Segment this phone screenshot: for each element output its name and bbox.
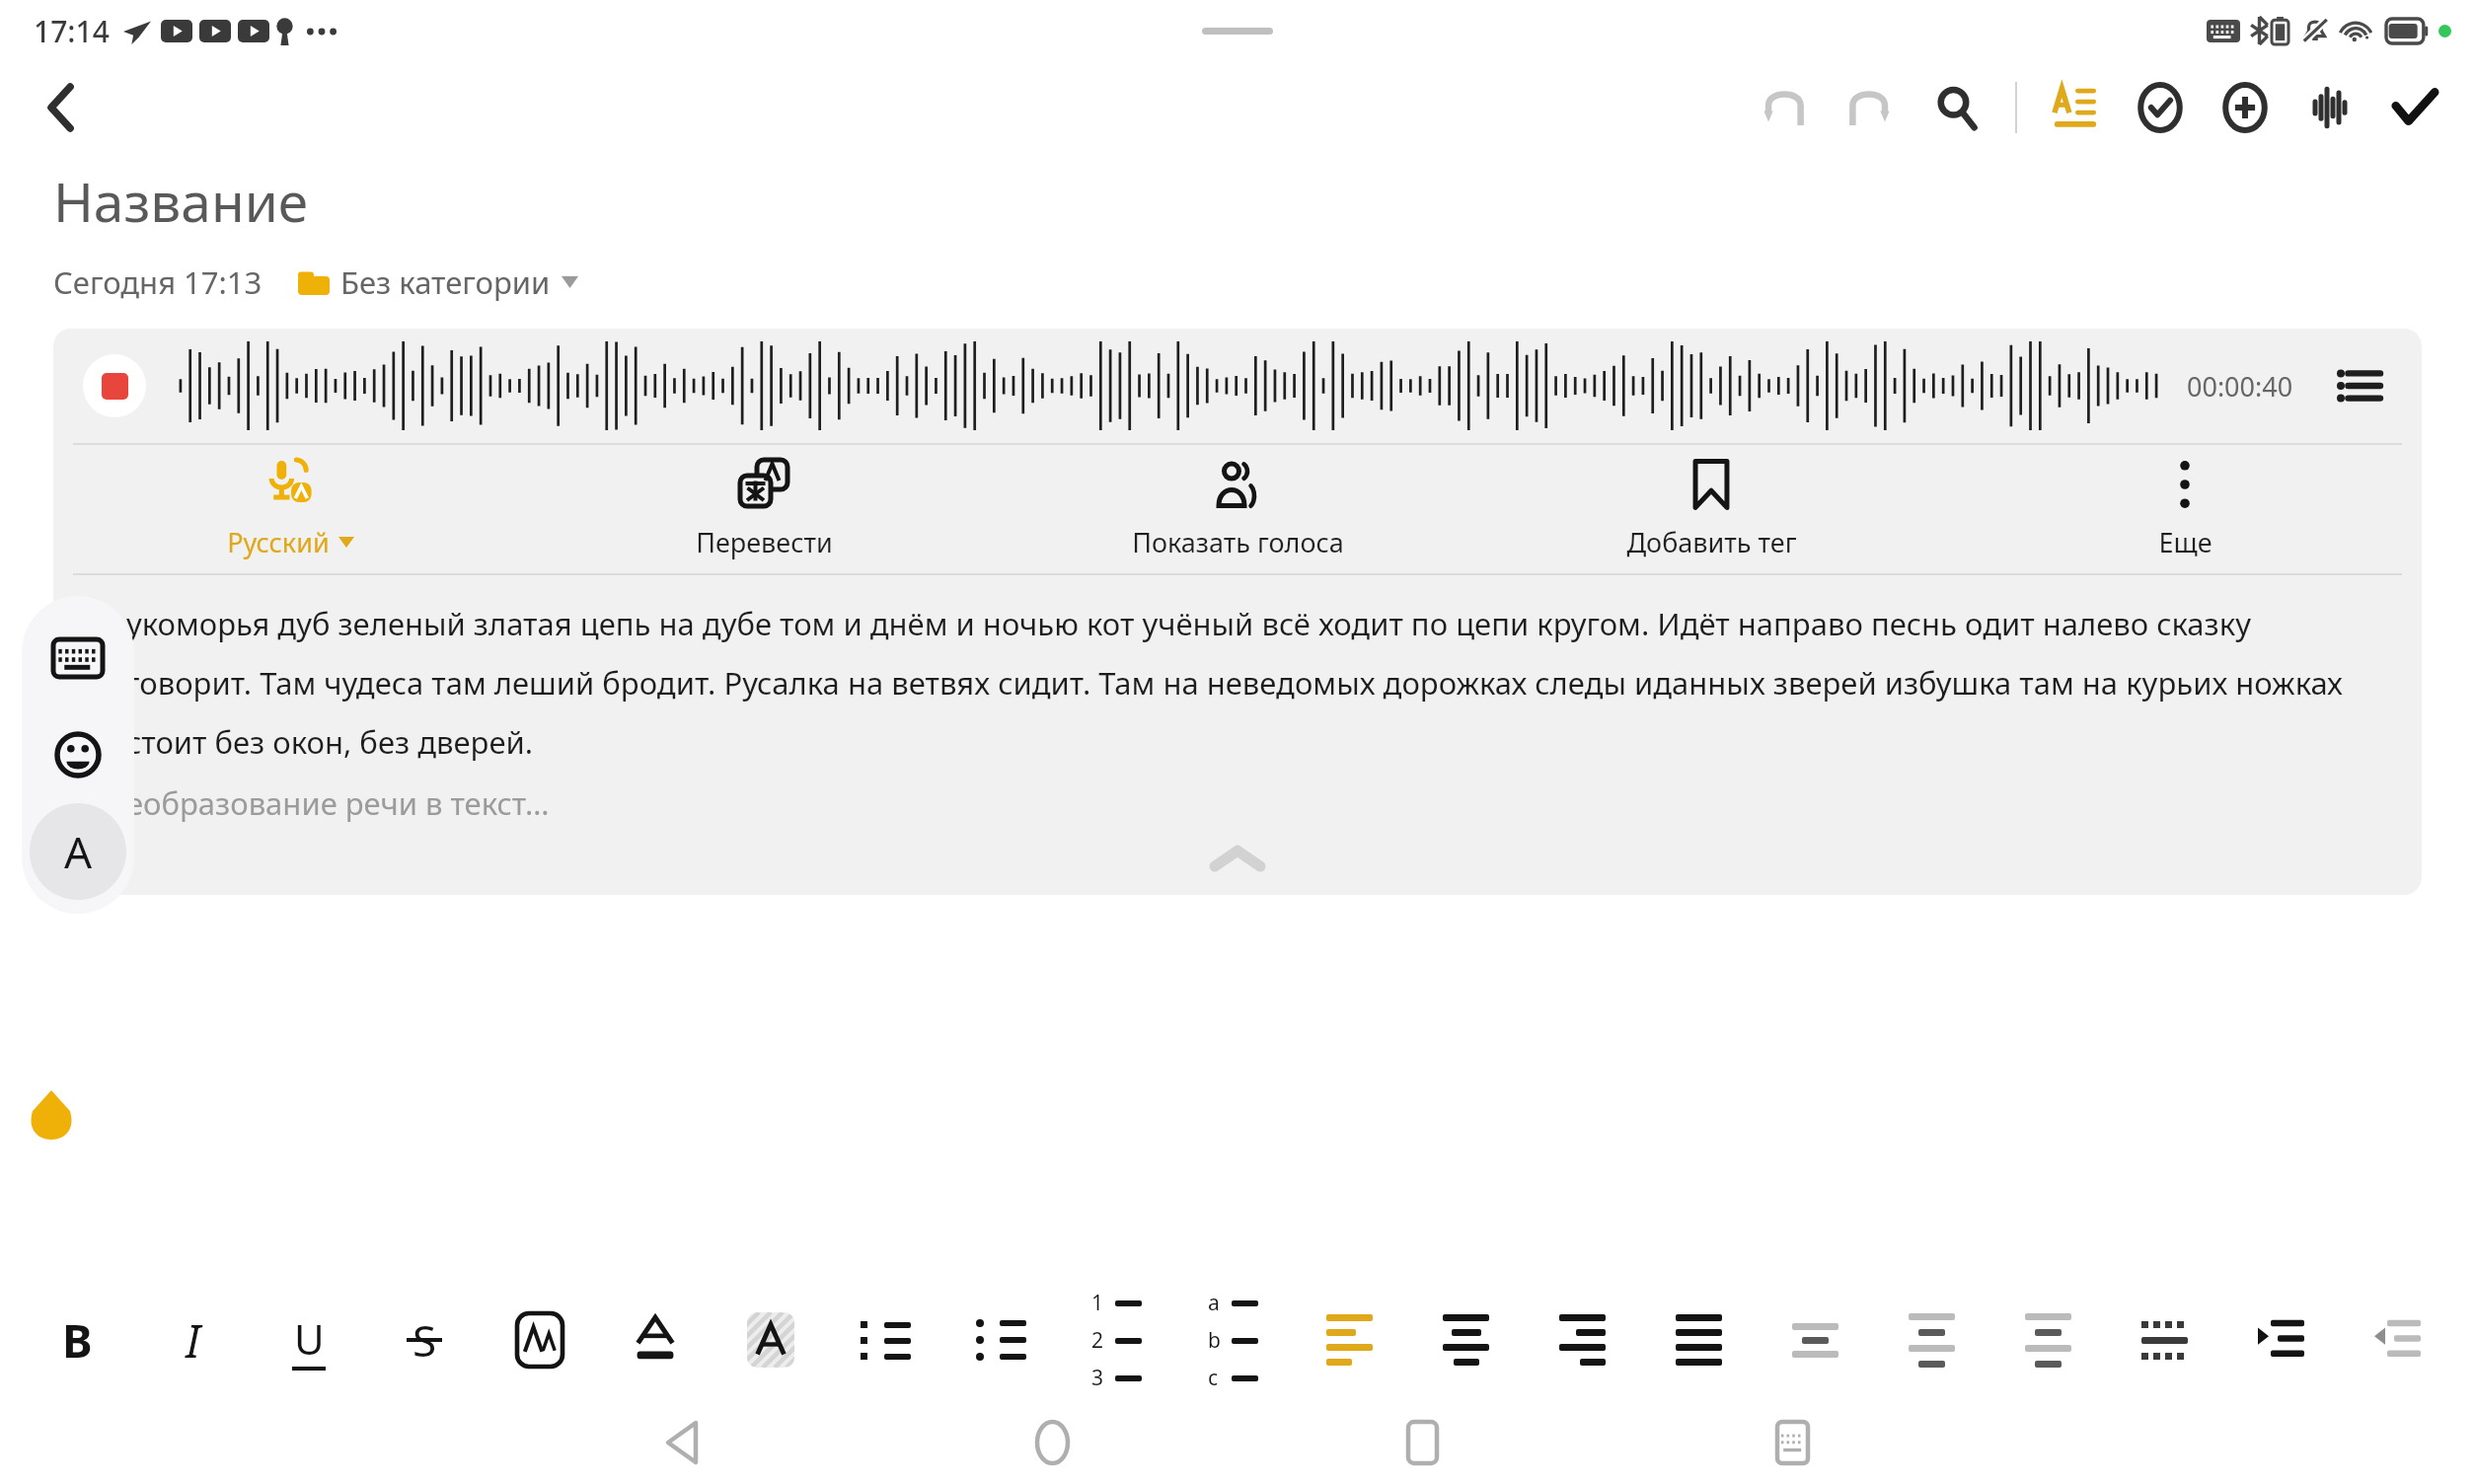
button[interactable]: Transcript list xyxy=(2331,358,2386,413)
button[interactable]: Bullet list xyxy=(828,1279,943,1401)
button[interactable]: Align center xyxy=(1407,1279,1524,1401)
button[interactable]: Home xyxy=(1003,1401,1101,1484)
button[interactable]: Показать голоса xyxy=(1001,445,1474,573)
staticText: 00:00:40 xyxy=(2187,368,2293,405)
button[interactable]: Emoji xyxy=(30,706,126,803)
staticText: b xyxy=(1208,1326,1221,1355)
staticText: Название xyxy=(53,164,309,238)
staticText: Сегодня 17:13 xyxy=(53,261,262,303)
button[interactable]: Redo xyxy=(1837,75,1903,140)
button[interactable]: Justify xyxy=(1640,1279,1757,1401)
button[interactable]: Font size xyxy=(482,1279,597,1401)
button[interactable]: Strikethrough xyxy=(366,1279,482,1401)
button[interactable]: Без категории xyxy=(298,258,578,307)
staticText: еобразование речи в текст… xyxy=(126,782,550,824)
button[interactable]: Еще xyxy=(1948,445,2422,573)
button[interactable]: Back xyxy=(633,1401,731,1484)
staticText: Без категории xyxy=(340,261,551,303)
button[interactable]: Outdent xyxy=(2339,1279,2455,1401)
button[interactable]: Recents xyxy=(1373,1401,1471,1484)
button[interactable]: Record audio xyxy=(2297,75,2362,140)
staticText: Показать голоса xyxy=(1132,524,1344,560)
button[interactable]: Collapse xyxy=(53,824,2422,895)
staticText: укоморья дуб зеленый златая цепь на дубе… xyxy=(126,603,2364,763)
button[interactable]: Undo xyxy=(1751,75,1816,140)
staticText: c xyxy=(1208,1364,1219,1392)
button[interactable]: Text formatting xyxy=(2043,75,2108,140)
button[interactable]: Keyboard xyxy=(1743,1401,1841,1484)
button[interactable]: Lettered list xyxy=(1174,1279,1291,1401)
button[interactable]: Перевести xyxy=(527,445,1001,573)
staticText: 17:14 xyxy=(34,11,110,51)
button[interactable]: Numbered list xyxy=(1059,1279,1174,1401)
staticText: Русский xyxy=(227,524,330,560)
button[interactable]: Divider xyxy=(2106,1279,2222,1401)
button[interactable]: Line spacing 1 xyxy=(1757,1279,1873,1401)
button[interactable]: Underline xyxy=(251,1279,366,1401)
staticText: I xyxy=(186,1309,200,1372)
staticText: Перевести xyxy=(696,524,833,560)
button[interactable]: Line spacing 2 xyxy=(1873,1279,1989,1401)
button[interactable]: Stop recording xyxy=(83,354,146,417)
staticText: Еще xyxy=(2158,524,2212,560)
button[interactable]: Done xyxy=(2382,75,2447,140)
button[interactable]: Back xyxy=(30,76,93,139)
button[interactable]: Line spacing 3 xyxy=(1989,1279,2106,1401)
button[interactable]: Добавить тег xyxy=(1474,445,1948,573)
button[interactable]: Highlight xyxy=(712,1279,828,1401)
button[interactable]: Search xyxy=(1924,75,1989,140)
staticText: 3 xyxy=(1091,1364,1104,1392)
button[interactable]: Bold xyxy=(20,1279,135,1401)
staticText: S xyxy=(412,1310,437,1370)
button[interactable]: Indent xyxy=(2222,1279,2339,1401)
staticText: Добавить тег xyxy=(1626,524,1797,560)
button[interactable]: Text format xyxy=(30,803,126,900)
button[interactable]: Checklist xyxy=(2128,75,2193,140)
staticText: B xyxy=(62,1309,93,1372)
button[interactable]: Italic xyxy=(135,1279,251,1401)
staticText: a xyxy=(1208,1289,1220,1317)
staticText: U xyxy=(294,1310,325,1367)
button[interactable]: Text color xyxy=(597,1279,712,1401)
button[interactable]: Align right xyxy=(1524,1279,1640,1401)
staticText: 2 xyxy=(1091,1326,1104,1355)
staticText: A xyxy=(64,822,93,881)
button[interactable]: Dotted list xyxy=(943,1279,1059,1401)
button[interactable]: Русский xyxy=(53,445,527,573)
staticText: 1 xyxy=(1091,1289,1104,1317)
button[interactable]: Add xyxy=(2212,75,2278,140)
button[interactable]: Align left xyxy=(1291,1279,1407,1401)
button[interactable]: Keyboard xyxy=(30,610,126,706)
